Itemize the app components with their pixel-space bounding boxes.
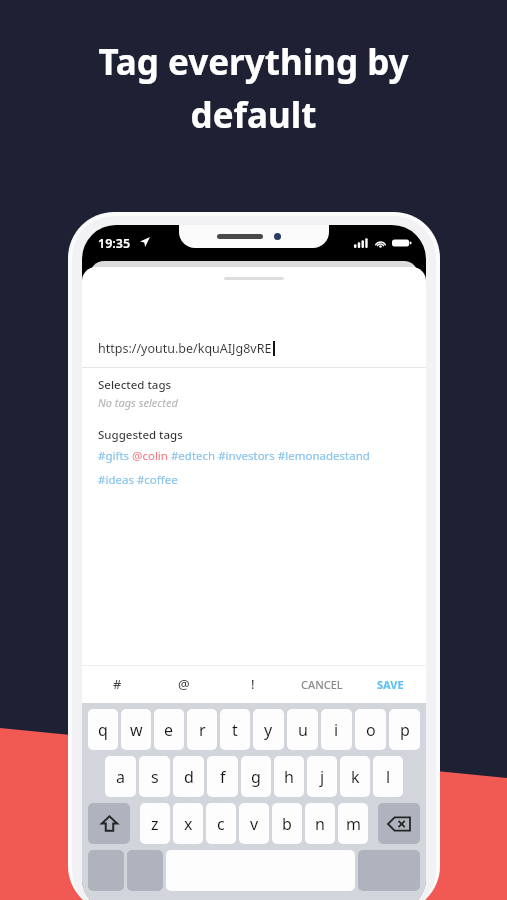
staticText: No tags selected	[98, 395, 178, 410]
button[interactable]: Shift	[88, 803, 130, 844]
staticText: d	[184, 766, 194, 788]
staticText: Tag everything by default	[0, 38, 507, 138]
staticText: #gifts @colin #edtech #investors #lemona…	[98, 448, 370, 464]
button[interactable]: k	[340, 756, 370, 797]
staticText: n	[315, 813, 325, 835]
button[interactable]: v	[239, 803, 269, 844]
button[interactable]: Return	[358, 850, 420, 891]
button[interactable]: j	[307, 756, 337, 797]
button[interactable]: a	[105, 756, 136, 797]
button[interactable]: y	[253, 709, 284, 750]
staticText: y	[264, 719, 273, 741]
button[interactable]: Insert #	[102, 669, 132, 699]
button[interactable]: x	[173, 803, 203, 844]
button[interactable]: o	[355, 709, 386, 750]
staticText: u	[298, 719, 308, 741]
staticText: t	[232, 719, 238, 741]
button[interactable]: m	[338, 803, 368, 844]
staticText: m	[346, 813, 361, 835]
button[interactable]: #gifts @colin #edtech #investors #lemona…	[98, 448, 370, 464]
staticText: i	[334, 719, 339, 741]
staticText: h	[284, 766, 294, 788]
staticText: !	[251, 675, 255, 693]
staticText: g	[251, 766, 261, 788]
button[interactable]: n	[305, 803, 335, 844]
button[interactable]: g	[241, 756, 271, 797]
button[interactable]: u	[287, 709, 318, 750]
staticText: c	[217, 813, 225, 835]
button[interactable]: SAVE	[369, 671, 412, 698]
button[interactable]: d	[173, 756, 204, 797]
button[interactable]: b	[272, 803, 302, 844]
button[interactable]: p	[389, 709, 420, 750]
staticText: w	[130, 719, 143, 741]
staticText: #	[113, 675, 122, 693]
staticText: v	[250, 813, 259, 835]
button[interactable]: Emoji	[127, 850, 163, 891]
button[interactable]: z	[140, 803, 170, 844]
staticText: b	[282, 813, 292, 835]
button[interactable]: q	[88, 709, 118, 750]
staticText: k	[351, 766, 360, 788]
staticText: l	[386, 766, 391, 788]
button[interactable]: t	[220, 709, 250, 750]
staticText: a	[116, 766, 125, 788]
staticText: q	[98, 719, 108, 741]
button[interactable]: CANCEL	[293, 671, 351, 698]
staticText: 19:35	[98, 235, 131, 252]
button[interactable]: f	[207, 756, 238, 797]
button[interactable]: e	[154, 709, 184, 750]
staticText: CANCEL	[301, 677, 343, 692]
button[interactable]: https://youtu.be/kquAIJg8vRE	[82, 329, 426, 367]
staticText: s	[151, 766, 159, 788]
button[interactable]: #ideas #coffee	[98, 472, 178, 488]
staticText: x	[184, 813, 193, 835]
staticText: Suggested tags	[98, 427, 183, 443]
staticText: r	[199, 719, 206, 741]
staticText: f	[220, 766, 226, 788]
staticText: #ideas #coffee	[98, 472, 178, 488]
button[interactable]: Backspace	[378, 803, 420, 844]
button[interactable]: i	[321, 709, 352, 750]
staticText: j	[320, 766, 325, 788]
staticText: z	[151, 813, 159, 835]
button[interactable]: w	[121, 709, 151, 750]
staticText: @	[178, 675, 190, 693]
button[interactable]: r	[187, 709, 217, 750]
button[interactable]: Numbers	[88, 850, 124, 891]
button[interactable]: Insert !	[238, 669, 268, 699]
button[interactable]: Insert @	[169, 669, 199, 699]
button[interactable]: s	[139, 756, 170, 797]
staticText: e	[164, 719, 174, 741]
staticText: o	[366, 719, 376, 741]
staticText: SAVE	[377, 677, 404, 692]
staticText: https://youtu.be/kquAIJg8vRE	[98, 340, 272, 357]
button[interactable]: h	[274, 756, 304, 797]
staticText: Selected tags	[98, 377, 172, 393]
button[interactable]: c	[206, 803, 236, 844]
button[interactable]: l	[373, 756, 403, 797]
staticText: p	[400, 719, 410, 741]
